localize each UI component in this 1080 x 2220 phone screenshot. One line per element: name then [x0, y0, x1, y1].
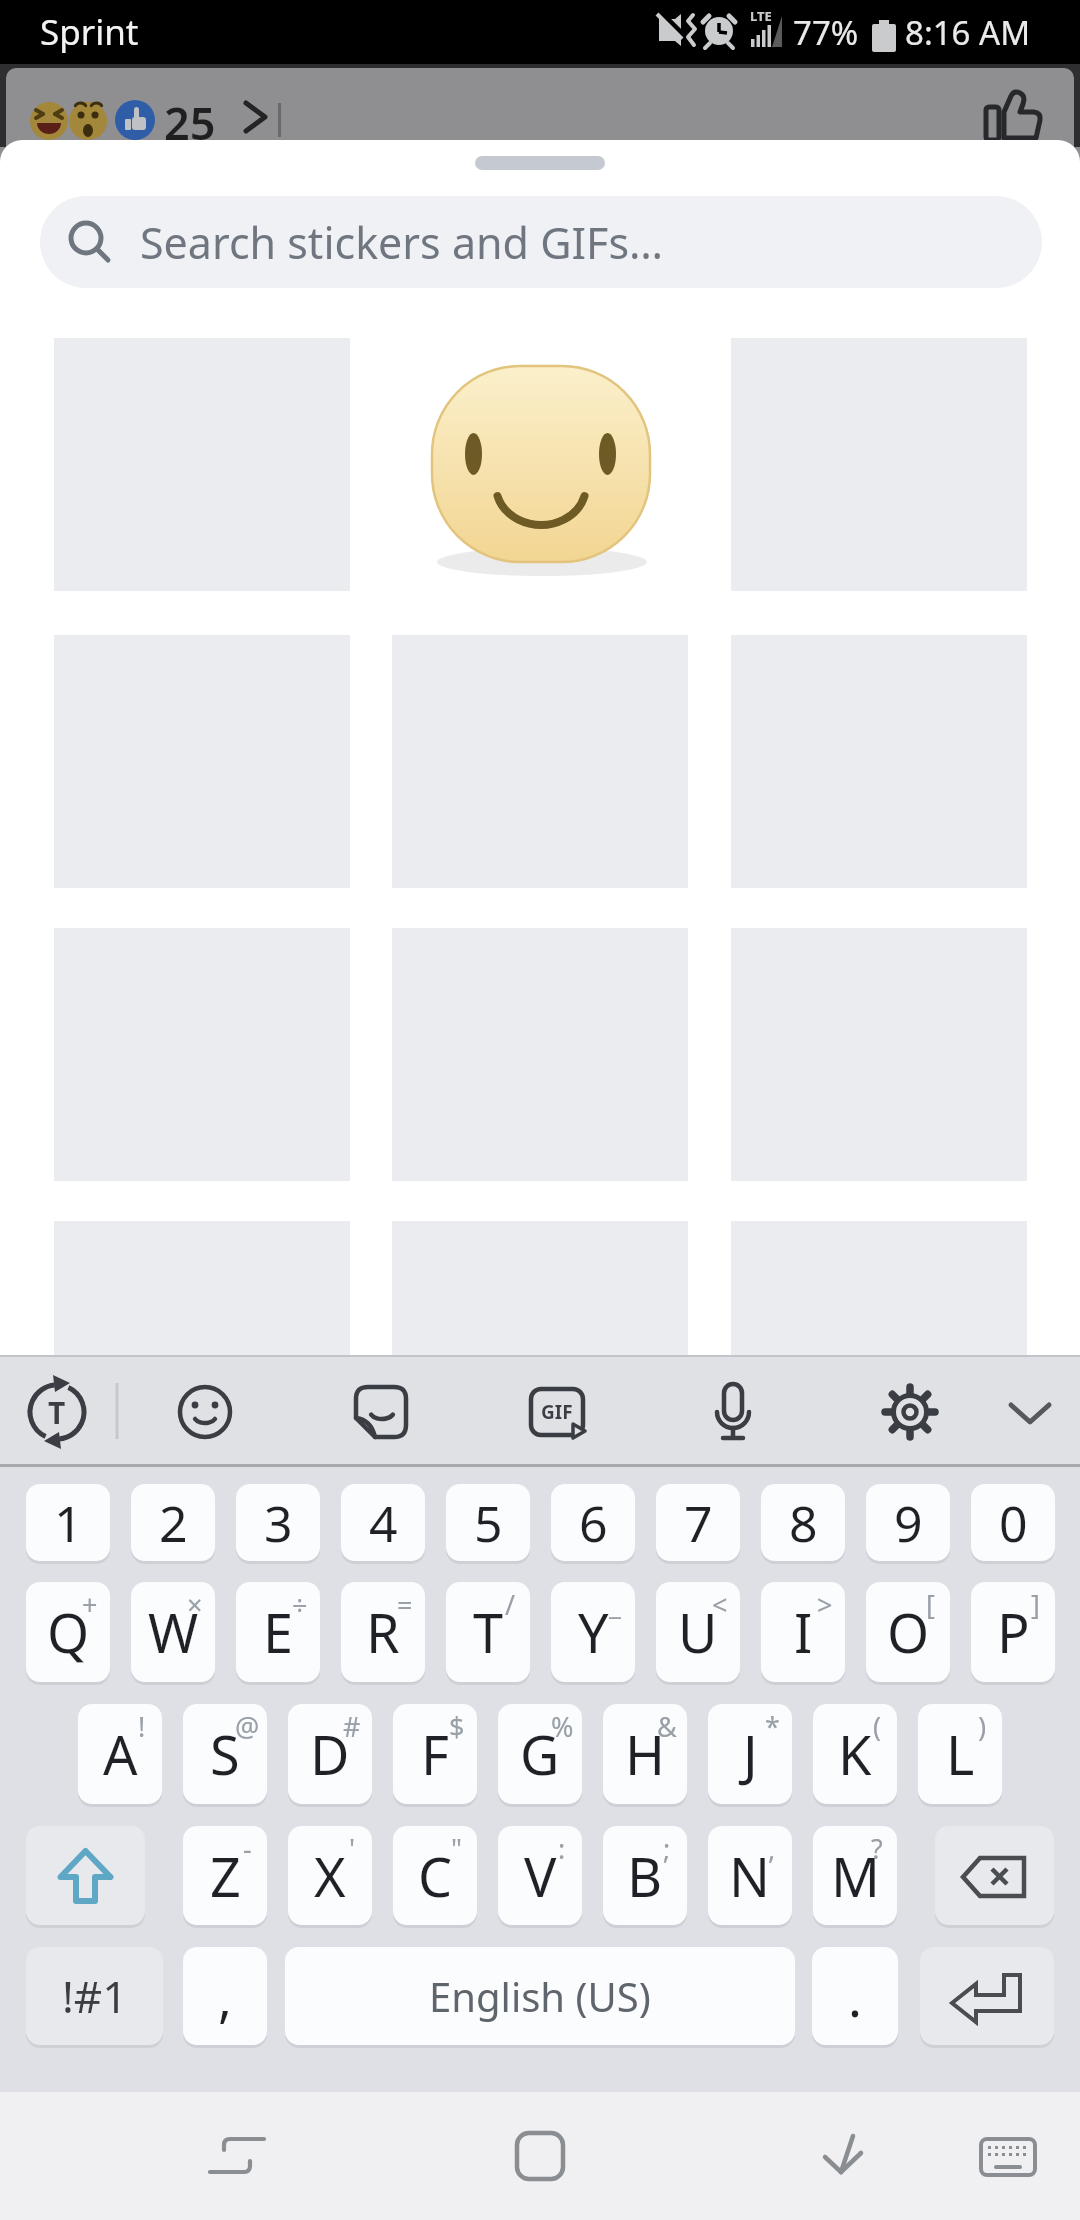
button[interactable]: [994, 1372, 1066, 1452]
staticText: Z: [210, 1839, 241, 1913]
button[interactable]: S: [183, 1704, 267, 1804]
staticText: 8: [789, 1489, 818, 1557]
button[interactable]: F: [393, 1704, 477, 1804]
button[interactable]: P: [971, 1582, 1055, 1682]
button[interactable]: 1: [26, 1484, 110, 1561]
button[interactable]: D: [288, 1704, 372, 1804]
button[interactable]: O: [866, 1582, 950, 1682]
staticText: H: [625, 1717, 666, 1791]
button[interactable]: [968, 2116, 1048, 2196]
button[interactable]: 5: [446, 1484, 530, 1561]
button[interactable]: Y: [551, 1582, 635, 1682]
button[interactable]: V: [498, 1826, 582, 1925]
staticText: +: [82, 1586, 98, 1620]
staticText: ": [451, 1830, 463, 1864]
button[interactable]: T: [17, 1372, 97, 1452]
staticText: 25: [164, 92, 216, 148]
button[interactable]: X: [288, 1826, 372, 1925]
button[interactable]: !#1: [26, 1947, 163, 2045]
button[interactable]: 7: [656, 1484, 740, 1561]
button[interactable]: Q: [26, 1582, 110, 1682]
button[interactable]: G: [498, 1704, 582, 1804]
button[interactable]: 3: [236, 1484, 320, 1561]
staticText: C: [418, 1839, 453, 1913]
button[interactable]: H: [603, 1704, 687, 1804]
staticText: &: [657, 1708, 677, 1742]
button[interactable]: N: [708, 1826, 792, 1925]
staticText: <: [712, 1586, 728, 1620]
staticText: 3: [264, 1489, 293, 1557]
button[interactable]: [26, 1826, 145, 1925]
staticText: [: [926, 1586, 935, 1620]
staticText: ÷: [292, 1586, 308, 1620]
staticText: G: [520, 1717, 560, 1791]
staticText: (: [873, 1708, 882, 1742]
button[interactable]: K: [813, 1704, 897, 1804]
button[interactable]: 2: [131, 1484, 215, 1561]
button[interactable]: C: [393, 1826, 477, 1925]
staticText: Y: [578, 1595, 609, 1669]
button[interactable]: 0: [971, 1484, 1055, 1561]
button[interactable]: [341, 1372, 421, 1452]
button[interactable]: [392, 338, 688, 591]
button[interactable]: L: [918, 1704, 1002, 1804]
button[interactable]: 9: [866, 1484, 950, 1561]
staticText: Sprint: [40, 8, 139, 56]
button[interactable]: J: [708, 1704, 792, 1804]
button[interactable]: .: [812, 1947, 898, 2045]
button[interactable]: E: [236, 1582, 320, 1682]
button[interactable]: R: [341, 1582, 425, 1682]
staticText: D: [310, 1717, 350, 1791]
button[interactable]: English (US): [285, 1947, 795, 2045]
button[interactable]: A: [78, 1704, 162, 1804]
button[interactable]: [500, 2116, 580, 2196]
button[interactable]: U: [656, 1582, 740, 1682]
staticText: @: [235, 1708, 260, 1742]
button[interactable]: I: [761, 1582, 845, 1682]
staticText: -: [243, 1830, 252, 1864]
staticText: .: [848, 1961, 862, 2032]
staticText: ×: [187, 1586, 203, 1620]
staticText: X: [314, 1839, 346, 1913]
staticText: >: [817, 1586, 833, 1620]
button[interactable]: [803, 2116, 883, 2196]
staticText: ': [349, 1830, 356, 1864]
staticText: E: [263, 1595, 294, 1669]
button[interactable]: W: [131, 1582, 215, 1682]
button[interactable]: [197, 2116, 277, 2196]
staticText: !: [138, 1708, 146, 1742]
staticText: 1: [54, 1489, 83, 1557]
staticText: Q: [47, 1595, 90, 1669]
button[interactable]: B: [603, 1826, 687, 1925]
button[interactable]: [693, 1372, 773, 1452]
button[interactable]: M: [813, 1826, 897, 1925]
button[interactable]: ,: [183, 1947, 267, 2045]
button[interactable]: GIF: [517, 1372, 597, 1452]
button[interactable]: 4: [341, 1484, 425, 1561]
button[interactable]: [870, 1372, 950, 1452]
staticText: ,: [218, 1961, 232, 2032]
staticText: %: [551, 1708, 574, 1742]
button[interactable]: [935, 1826, 1054, 1925]
staticText: J: [743, 1717, 758, 1791]
button[interactable]: 6: [551, 1484, 635, 1561]
button[interactable]: [165, 1372, 245, 1452]
button[interactable]: [920, 1947, 1054, 2045]
button[interactable]: 8: [761, 1484, 845, 1561]
staticText: _: [609, 1586, 621, 1620]
staticText: *: [765, 1708, 780, 1742]
button[interactable]: Z: [183, 1826, 267, 1925]
button[interactable]: T: [446, 1582, 530, 1682]
button[interactable]: Search stickers and GIFs…: [40, 196, 1042, 288]
